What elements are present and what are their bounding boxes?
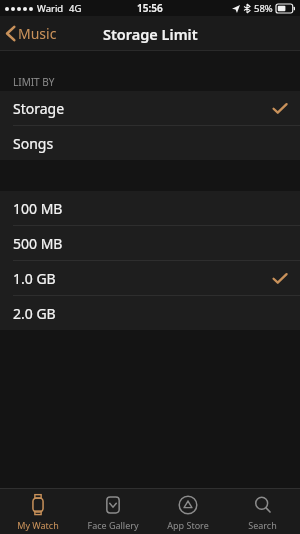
button[interactable]: Search [225,489,300,534]
button[interactable]: Storage [0,91,300,125]
staticText: 500 MB [13,234,63,253]
button[interactable]: Face Gallery [75,489,150,534]
other: Search [252,494,274,516]
button[interactable]: 500 MB [0,226,300,260]
button[interactable]: 1.0 GB [0,261,300,295]
staticText: Songs [13,134,54,153]
button[interactable]: Songs [0,126,300,160]
staticText: 100 MB [13,199,63,218]
staticText: Warid [37,2,64,15]
staticText: 4G [69,2,82,15]
other: My Watch [27,494,49,516]
button[interactable]: Music [0,20,67,47]
other: App Store [177,494,199,516]
staticText: App Store [167,519,209,531]
button[interactable]: 2.0 GB [0,296,300,330]
staticText: Face Gallery [87,519,139,531]
staticText: 58% [254,2,273,15]
staticText: 1.0 GB [13,269,56,288]
button[interactable]: App Store [150,489,225,534]
staticText: 15:56 [137,1,163,15]
staticText: Storage [13,99,65,118]
button[interactable]: My Watch [0,489,75,534]
staticText: 2.0 GB [13,304,56,323]
staticText: My Watch [17,519,59,531]
button[interactable]: 100 MB [0,191,300,225]
staticText: Search [248,519,277,531]
staticText: LIMIT BY [13,75,55,89]
staticText: Storage Limit [103,24,198,44]
other: Face Gallery [102,494,124,516]
staticText: Music [18,24,57,43]
